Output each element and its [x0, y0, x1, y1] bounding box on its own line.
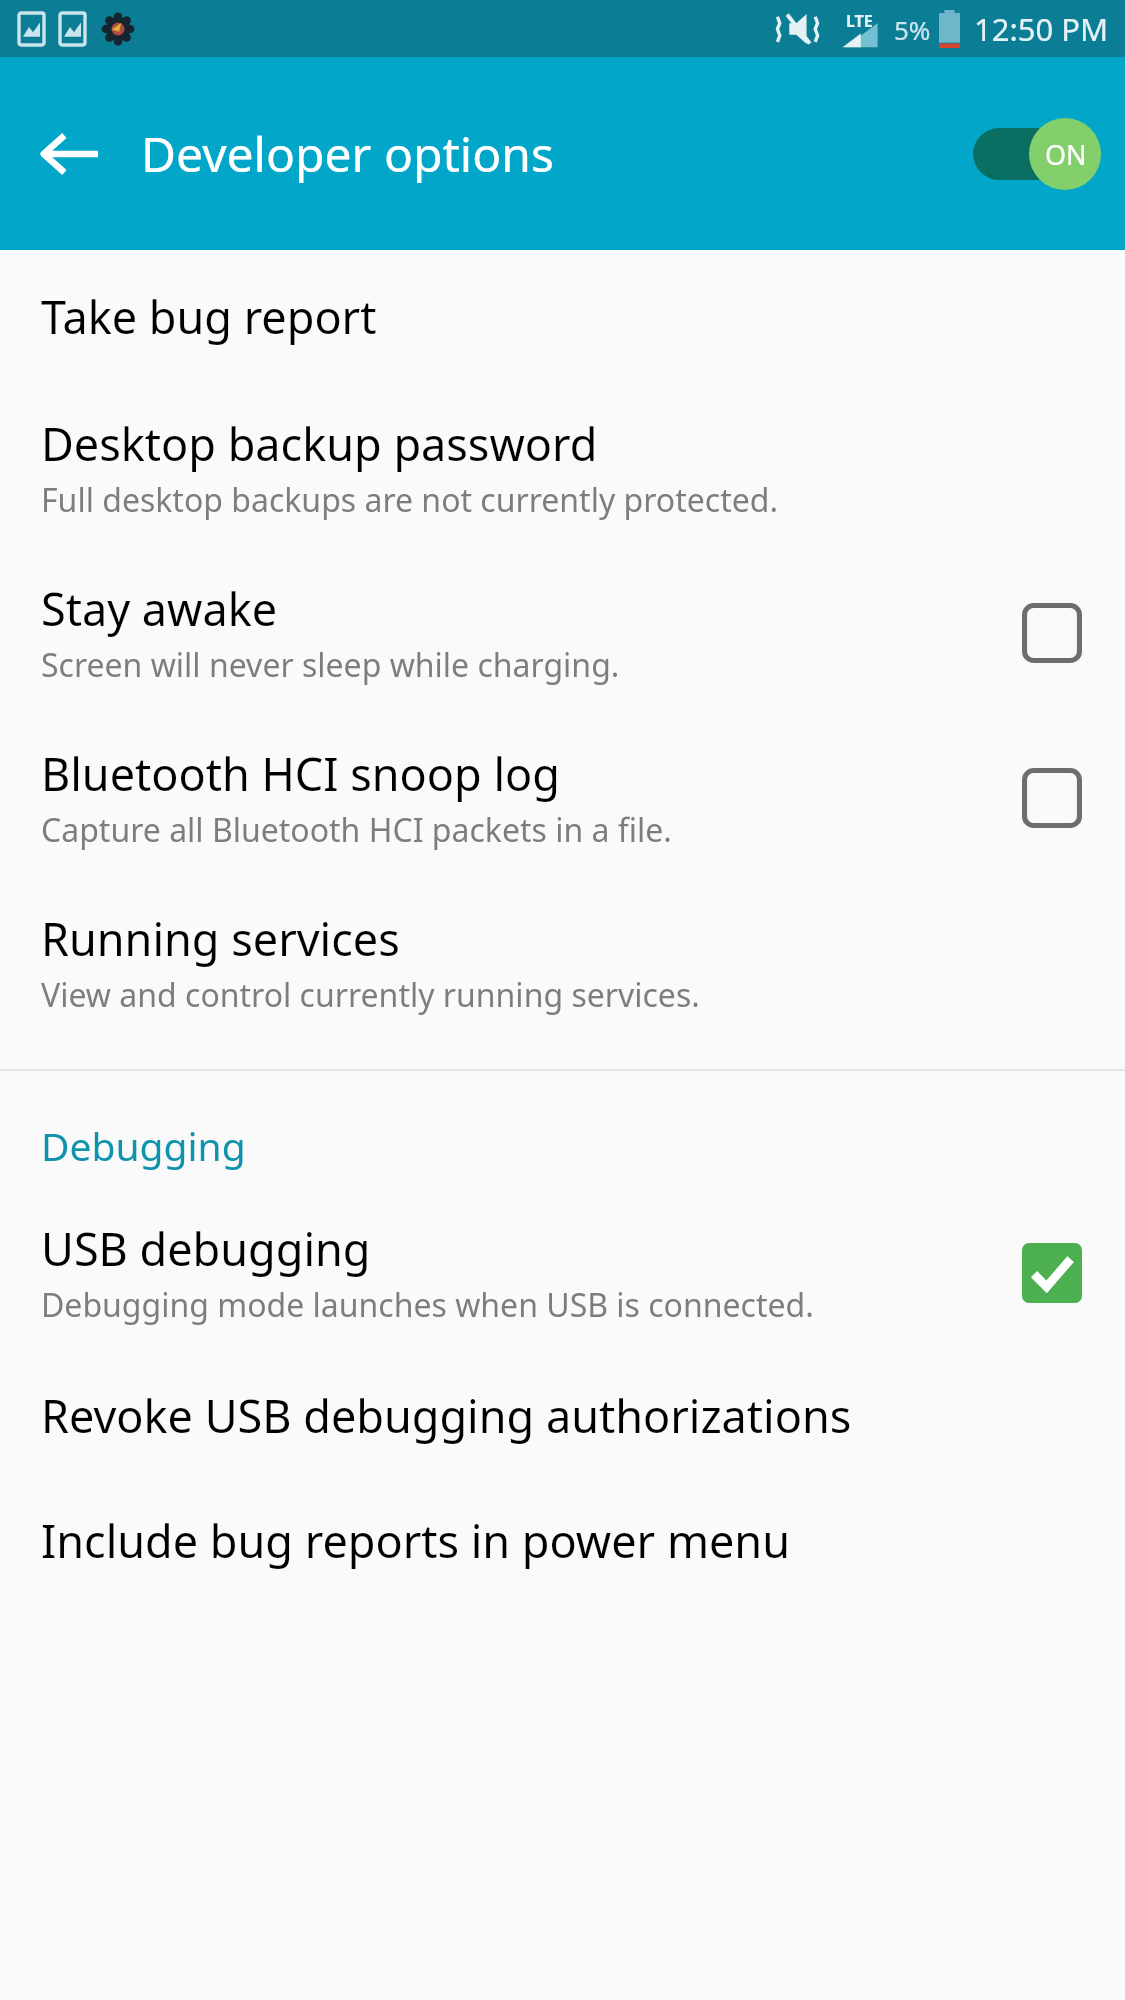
button[interactable]: Enabled checkbox: [1021, 1242, 1083, 1304]
button[interactable]: Desktop backup password: [0, 385, 1125, 550]
button[interactable]: Back: [22, 106, 118, 202]
staticText: Running services: [41, 908, 400, 969]
staticText: 12:50 PM: [974, 8, 1109, 50]
staticText: Revoke USB debugging authorizations: [41, 1385, 852, 1446]
staticText: View and control currently running servi…: [41, 973, 700, 1017]
staticText: Full desktop backups are not currently p…: [41, 478, 778, 522]
staticText: USB debugging: [41, 1218, 371, 1279]
staticText: Stay awake: [41, 578, 278, 639]
staticText: Capture all Bluetooth HCI packets in a f…: [41, 808, 672, 852]
button[interactable]: Include bug reports in power menu: [0, 1480, 1125, 1605]
staticText: Include bug reports in power menu: [41, 1510, 790, 1571]
button[interactable]: Disabled checkbox: [1021, 602, 1083, 664]
staticText: LTE: [846, 10, 873, 32]
button[interactable]: Revoke USB debugging authorizations: [0, 1353, 1125, 1480]
button[interactable]: USB debugging: [0, 1190, 1125, 1353]
button[interactable]: Take bug report: [0, 250, 1125, 385]
staticText: Debugging mode launches when USB is conn…: [41, 1283, 814, 1327]
button[interactable]: Disabled checkbox: [1021, 767, 1083, 829]
staticText: ON: [1045, 136, 1087, 173]
staticText: Take bug report: [41, 286, 377, 347]
staticText: Debugging: [41, 1119, 246, 1172]
staticText: Bluetooth HCI snoop log: [41, 743, 560, 804]
button[interactable]: Bluetooth HCI snoop log: [0, 715, 1125, 880]
button[interactable]: Stay awake: [0, 550, 1125, 715]
button[interactable]: Running services: [0, 880, 1125, 1047]
staticText: Developer options: [141, 121, 554, 186]
staticText: Desktop backup password: [41, 413, 598, 474]
staticText: Screen will never sleep while charging.: [41, 643, 620, 687]
button[interactable]: Toggle developer options: [965, 118, 1101, 190]
staticText: 5%: [894, 12, 931, 47]
